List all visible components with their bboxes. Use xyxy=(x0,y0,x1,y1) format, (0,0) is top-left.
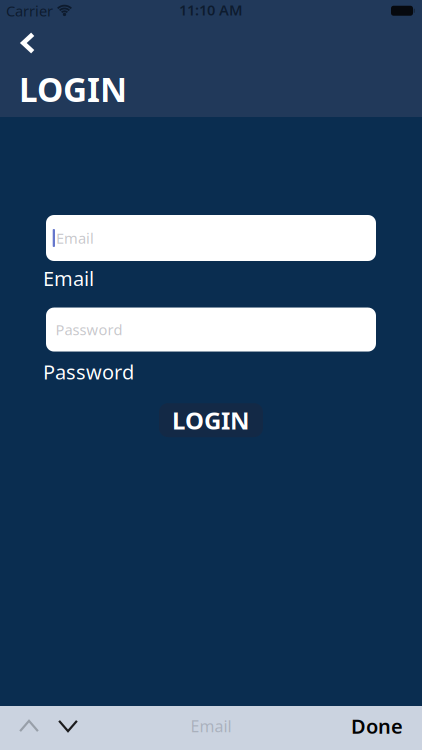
button[interactable]: Email xyxy=(46,215,376,261)
button[interactable]: Done xyxy=(351,713,422,739)
button[interactable]: Previous field xyxy=(0,720,39,732)
button[interactable]: Back xyxy=(0,0,35,54)
staticText: LOGIN xyxy=(172,404,250,436)
staticText: Done xyxy=(351,713,403,739)
staticText: Email xyxy=(43,265,94,292)
staticText: Password xyxy=(43,359,134,385)
staticText: LOGIN xyxy=(19,67,127,111)
staticText: Email xyxy=(190,715,231,737)
staticText: Password xyxy=(56,320,123,339)
button[interactable]: Password xyxy=(46,308,376,352)
staticText: 11:10 AM xyxy=(179,0,243,19)
button[interactable]: LOGIN xyxy=(159,403,263,437)
staticText: Carrier xyxy=(6,1,53,20)
button[interactable]: Next field xyxy=(39,720,78,732)
staticText: Email xyxy=(56,228,94,248)
